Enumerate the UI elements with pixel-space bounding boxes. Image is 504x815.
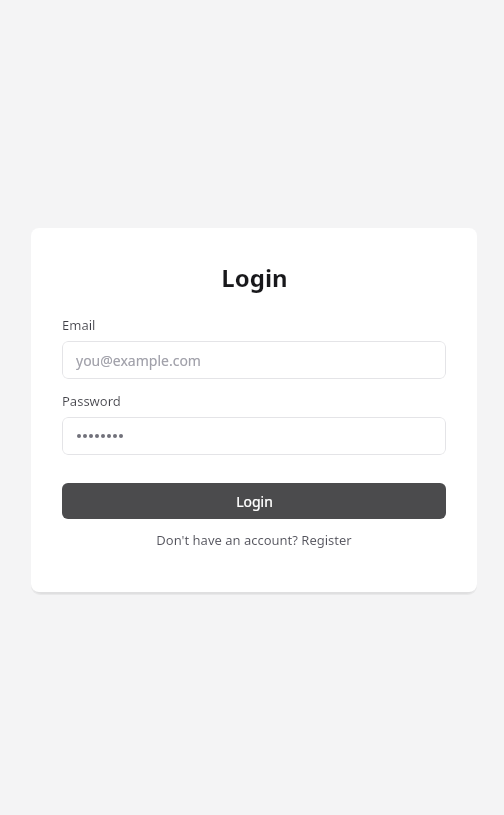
staticText: Password: [62, 392, 121, 410]
button[interactable]: [62, 417, 446, 455]
staticText: Login: [221, 261, 288, 294]
button[interactable]: you@example.com: [62, 341, 446, 379]
staticText: Login: [236, 492, 273, 511]
staticText: Email: [62, 316, 96, 334]
button[interactable]: Don't have an account? Register: [31, 528, 477, 552]
button[interactable]: Login: [62, 483, 446, 519]
staticText: you@example.com: [76, 351, 201, 370]
staticText: Don't have an account? Register: [156, 531, 352, 549]
